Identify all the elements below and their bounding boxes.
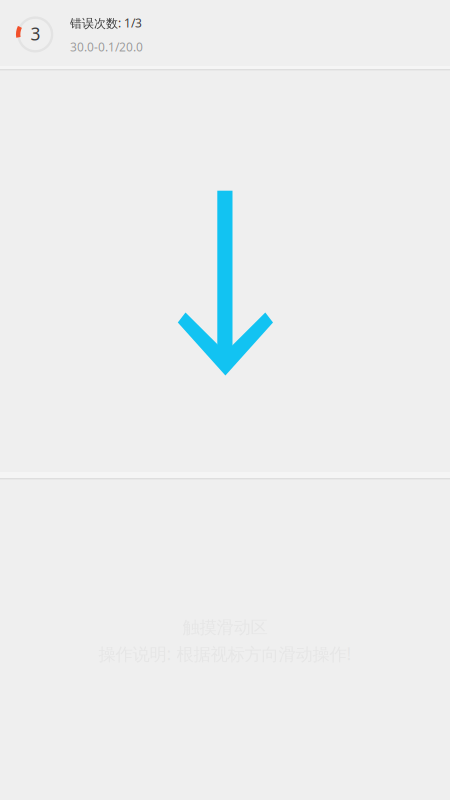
staticText: 错误次数: 1/3 — [70, 15, 142, 31]
staticText: 30.0-0.1/20.0 — [70, 39, 143, 55]
staticText: 3 — [30, 22, 40, 45]
button[interactable]: 3 — [0, 0, 450, 66]
